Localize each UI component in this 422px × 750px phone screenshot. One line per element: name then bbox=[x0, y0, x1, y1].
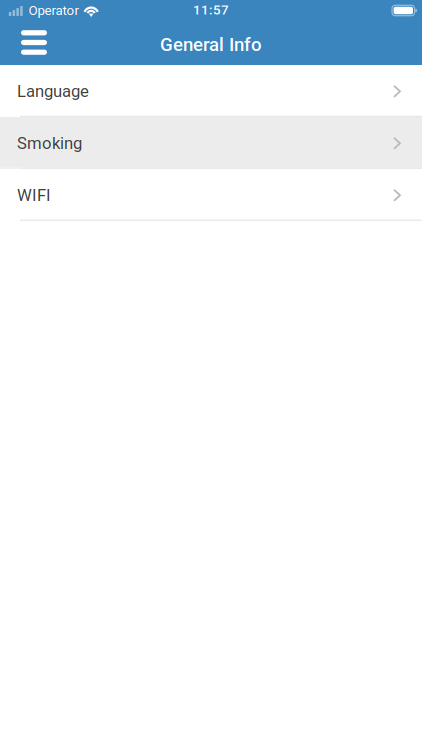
staticText: Operator bbox=[28, 3, 79, 18]
button[interactable]: Menu bbox=[12, 20, 56, 64]
staticText: WIFI bbox=[17, 185, 51, 205]
button[interactable]: WIFI bbox=[0, 169, 422, 220]
staticText: 11:57 bbox=[193, 2, 229, 18]
staticText: Language bbox=[17, 82, 89, 101]
staticText: General Info bbox=[160, 34, 262, 55]
button[interactable]: Smoking bbox=[0, 117, 422, 168]
staticText: Smoking bbox=[17, 134, 82, 153]
button[interactable]: Language bbox=[0, 65, 422, 116]
